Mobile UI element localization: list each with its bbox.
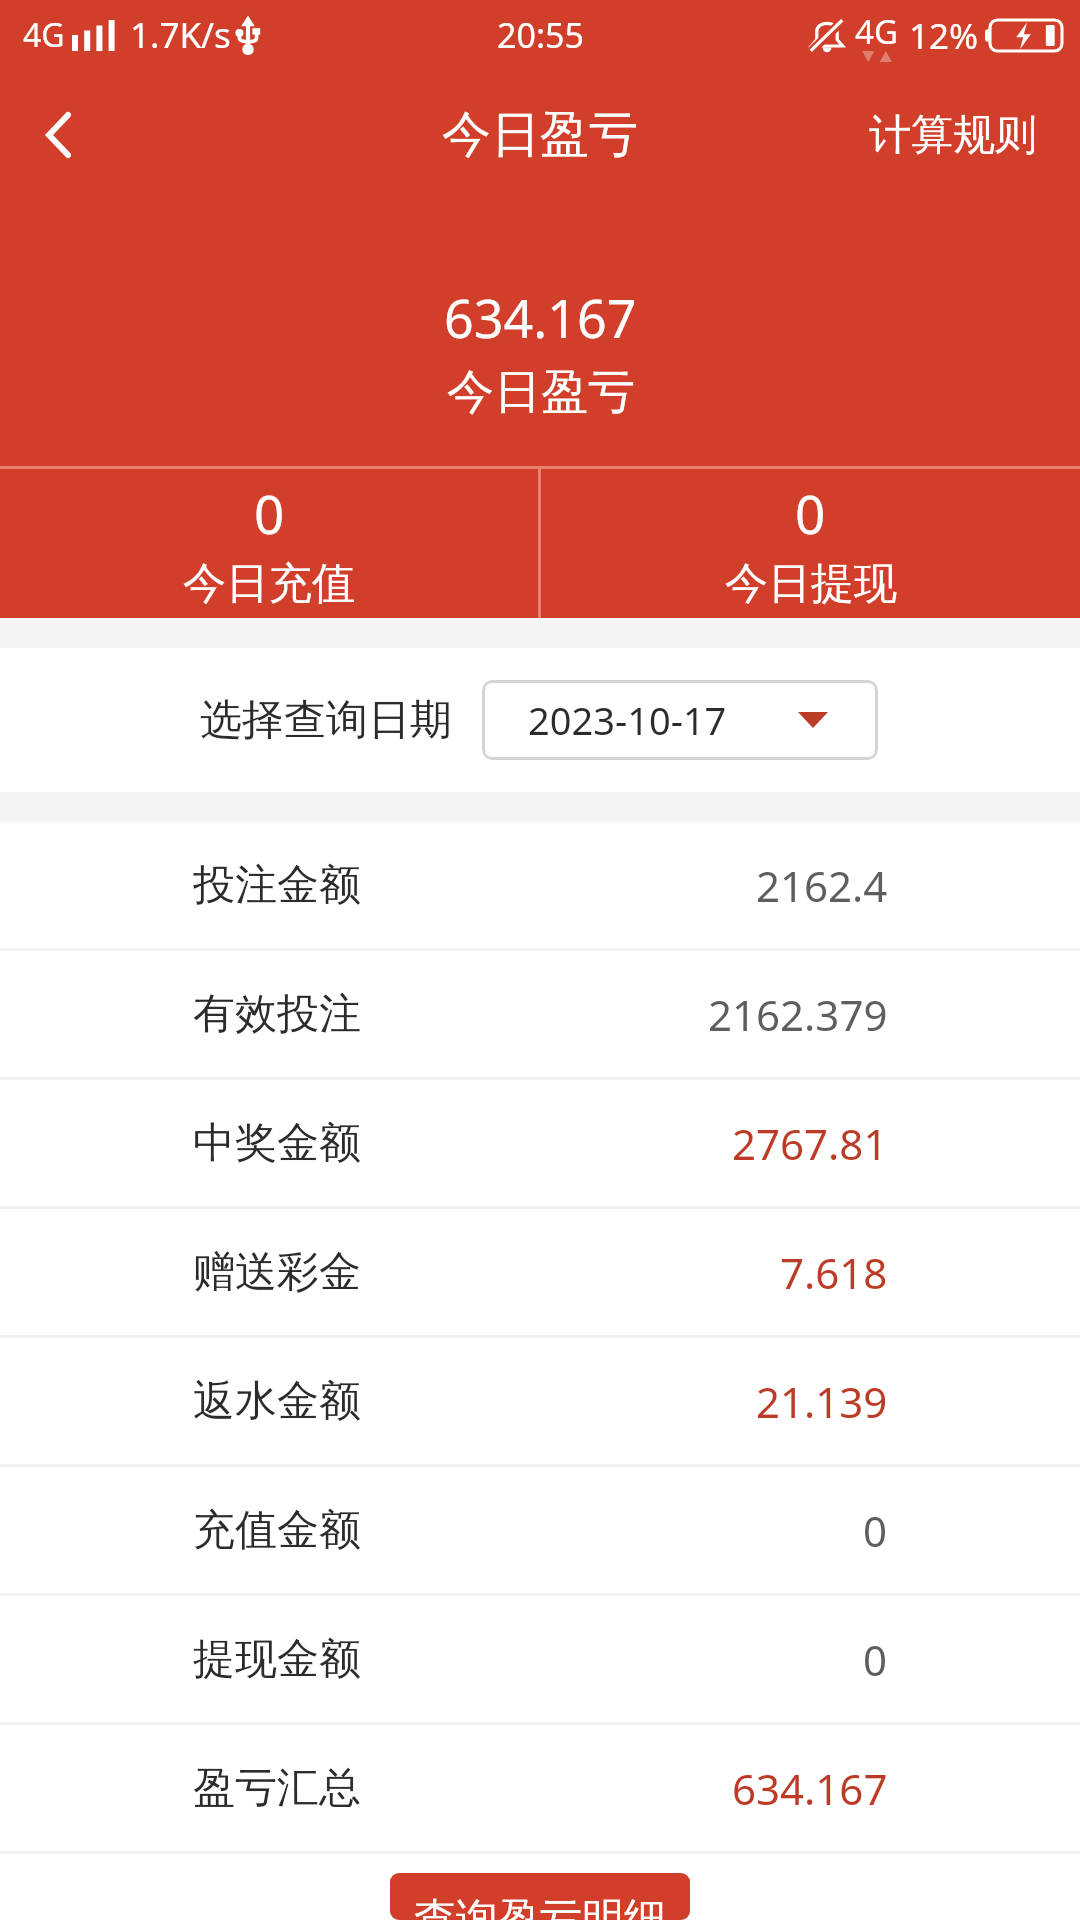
staticText: 今日充值 bbox=[183, 557, 355, 611]
staticText: 中奖金额 bbox=[193, 1117, 361, 1170]
button[interactable]: 赠送彩金 bbox=[0, 1209, 1080, 1335]
staticText: 0 bbox=[863, 1502, 888, 1559]
button[interactable]: 0 bbox=[0, 469, 538, 618]
button[interactable]: 中奖金额 bbox=[0, 1080, 1080, 1206]
staticText: 有效投注 bbox=[193, 988, 361, 1041]
staticText: 盈亏汇总 bbox=[193, 1762, 361, 1815]
button[interactable]: 充值金额 bbox=[0, 1467, 1080, 1593]
staticText: 634.167 bbox=[732, 1760, 888, 1817]
button[interactable]: 查询盈亏明细 bbox=[390, 1873, 690, 1920]
staticText: 选择查询日期 bbox=[200, 694, 452, 747]
button[interactable]: 返水金额 bbox=[0, 1338, 1080, 1464]
staticText: 0 bbox=[863, 1631, 888, 1688]
button[interactable]: 有效投注 bbox=[0, 951, 1080, 1077]
staticText: 12% bbox=[909, 12, 979, 60]
staticText: 0 bbox=[254, 477, 285, 549]
staticText: 21.139 bbox=[756, 1373, 888, 1430]
button[interactable]: 2023-10-17 bbox=[482, 680, 878, 760]
staticText: 7.618 bbox=[780, 1244, 888, 1301]
staticText: 4G bbox=[23, 13, 65, 57]
staticText: 20:55 bbox=[497, 12, 584, 58]
staticText: 今日盈亏 bbox=[447, 363, 635, 422]
staticText: 返水金额 bbox=[193, 1375, 361, 1428]
staticText: 今日盈亏 bbox=[442, 104, 638, 166]
button[interactable]: 盈亏汇总 bbox=[0, 1725, 1080, 1851]
staticText: 2767.81 bbox=[732, 1115, 888, 1172]
staticText: 今日提现 bbox=[725, 557, 897, 611]
staticText: 充值金额 bbox=[193, 1504, 361, 1557]
button[interactable]: 0 bbox=[541, 469, 1080, 618]
button[interactable]: 计算规则 bbox=[829, 70, 1080, 200]
button[interactable]: 投注金额 bbox=[0, 822, 1080, 948]
button[interactable]: 提现金额 bbox=[0, 1596, 1080, 1722]
staticText: 查询盈亏明细 bbox=[414, 1893, 666, 1920]
staticText: 1.7K/s bbox=[130, 11, 231, 59]
staticText: 提现金额 bbox=[193, 1633, 361, 1686]
staticText: 2162.4 bbox=[756, 857, 888, 914]
staticText: 0 bbox=[795, 477, 826, 549]
staticText: 2023-10-17 bbox=[528, 694, 727, 746]
staticText: 2162.379 bbox=[708, 986, 888, 1043]
staticText: 4G bbox=[855, 9, 898, 54]
staticText: 赠送彩金 bbox=[193, 1246, 361, 1299]
button[interactable]: Back bbox=[0, 70, 116, 200]
staticText: 计算规则 bbox=[869, 109, 1037, 162]
staticText: 634.167 bbox=[444, 282, 637, 353]
staticText: 投注金额 bbox=[193, 859, 361, 912]
